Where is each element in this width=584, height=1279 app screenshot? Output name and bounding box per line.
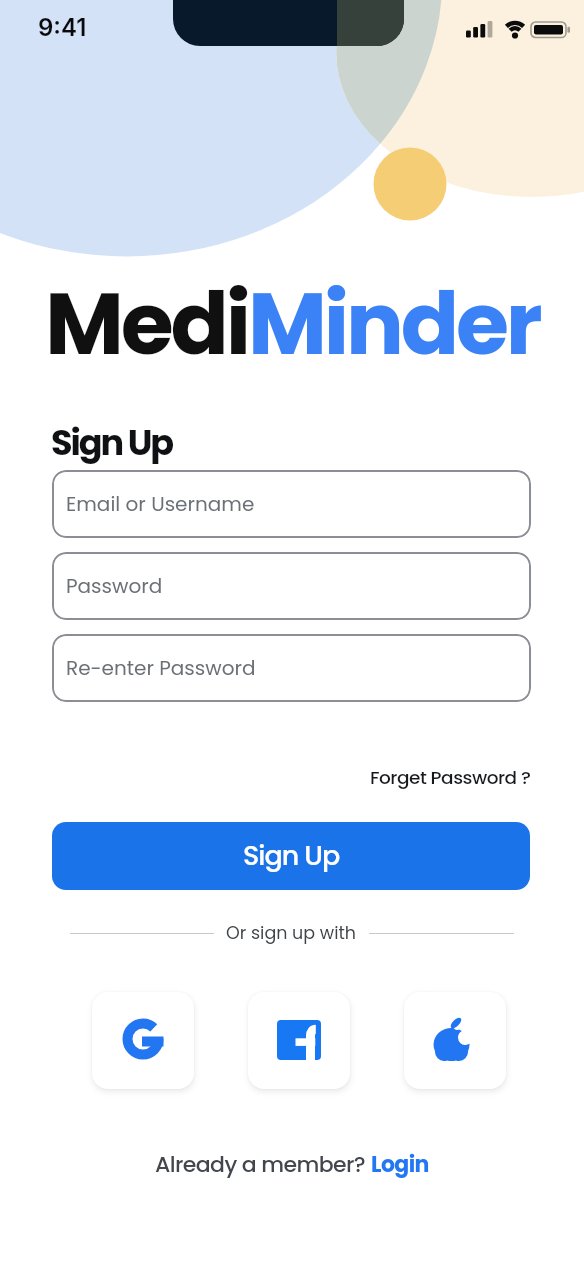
button[interactable]: Login [371, 1149, 429, 1180]
staticText: 9:41 [38, 13, 87, 42]
button[interactable]: Password [52, 552, 531, 620]
staticText: Minder [248, 264, 540, 384]
button[interactable]: Email or Username [52, 470, 531, 538]
staticText: Email or Username [66, 490, 255, 518]
button[interactable]: Forget Password ? [370, 765, 531, 791]
staticText: Or sign up with [226, 921, 357, 946]
staticText: Password [66, 572, 163, 600]
staticText: Re-enter Password [66, 654, 256, 682]
staticText: Already a member? [155, 1149, 371, 1180]
button[interactable] [248, 992, 350, 1089]
button[interactable] [92, 992, 194, 1089]
button[interactable]: Sign Up [52, 822, 530, 890]
button[interactable] [404, 992, 506, 1089]
button[interactable]: Re-enter Password [52, 634, 531, 702]
staticText: Sign Up [51, 418, 173, 467]
staticText: Sign Up [243, 837, 340, 875]
staticText: Medi [45, 264, 248, 384]
